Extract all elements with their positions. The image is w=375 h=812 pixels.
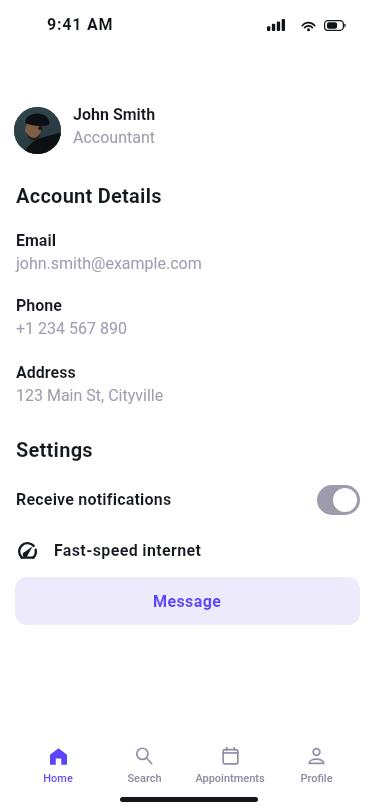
button[interactable]: Profile (273, 741, 359, 791)
staticText: 9:41 AM (47, 15, 114, 34)
button[interactable]: Appointments (187, 741, 273, 791)
button[interactable]: Message (15, 577, 360, 625)
staticText: Profile (300, 772, 333, 785)
staticText: +1 234 567 890 (16, 319, 127, 338)
button[interactable]: Receive notifications (0, 481, 375, 518)
staticText: Account Details (16, 184, 162, 207)
staticText: Appointments (195, 772, 265, 785)
staticText: Accountant (73, 128, 155, 147)
button[interactable]: Receive notifications toggle, on (317, 485, 360, 515)
staticText: Receive notifications (16, 490, 172, 509)
staticText: Email (16, 231, 56, 250)
button[interactable]: Fast-speed internet (0, 535, 375, 565)
staticText: Message (153, 592, 222, 611)
button[interactable]: Profile photo of John Smith (14, 107, 61, 154)
button[interactable]: Search (101, 741, 187, 791)
staticText: john.smith@example.com (16, 254, 202, 273)
staticText: Phone (16, 296, 62, 315)
staticText: 123 Main St, Cityville (16, 386, 164, 405)
staticText: Search (127, 772, 162, 785)
staticText: Home (43, 772, 73, 785)
staticText: Settings (16, 438, 93, 461)
button[interactable]: Home (14, 741, 101, 791)
staticText: Address (16, 363, 76, 382)
staticText: Fast-speed internet (54, 541, 202, 560)
staticText: John Smith (73, 105, 156, 124)
